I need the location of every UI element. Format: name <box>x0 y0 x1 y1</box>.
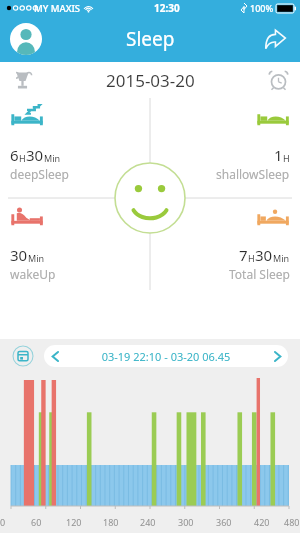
button[interactable]: Next <box>266 345 288 367</box>
button[interactable]: 7 <box>150 198 300 298</box>
staticText: 480 <box>284 516 300 528</box>
staticText: 2015-03-20 <box>106 69 195 92</box>
staticText: wakeUp <box>10 266 56 282</box>
staticText: 360 <box>216 516 232 528</box>
staticText: 1 <box>274 145 283 165</box>
staticText: H <box>283 152 290 164</box>
staticText: 30 <box>255 245 273 265</box>
staticText: 120 <box>66 516 82 528</box>
staticText: deepSleep <box>10 166 69 182</box>
staticText: 03-19 22:10 - 03-20 06.45 <box>66 349 266 364</box>
staticText: 6 <box>10 145 19 165</box>
button[interactable]: Previous <box>44 345 66 367</box>
staticText: 240 <box>140 516 156 528</box>
staticText: Total Sleep <box>229 266 290 282</box>
button[interactable]: Calendar <box>12 345 34 367</box>
staticText: MY MAXIS <box>34 2 81 15</box>
staticText: shallowSleep <box>216 166 290 182</box>
staticText: 30 <box>26 145 44 165</box>
staticText: Min <box>44 152 61 164</box>
staticText: 180 <box>103 516 119 528</box>
button[interactable]: Alarm <box>264 66 292 94</box>
staticText: H <box>19 152 26 164</box>
staticText: 7 <box>239 245 248 265</box>
staticText: 60 <box>31 516 42 528</box>
staticText: 300 <box>178 516 194 528</box>
button[interactable]: Previous <box>44 345 288 367</box>
staticText: H <box>248 252 255 264</box>
button[interactable]: 1 <box>150 98 300 198</box>
button[interactable]: Achievements <box>8 66 36 94</box>
button[interactable]: 30 <box>0 198 150 298</box>
button[interactable]: Profile <box>10 23 42 55</box>
staticText: 12:30 <box>154 1 180 15</box>
staticText: 0 <box>0 516 6 528</box>
button[interactable]: Share <box>258 22 292 56</box>
staticText: 30 <box>10 245 28 265</box>
staticText: Min <box>273 252 290 264</box>
staticText: Sleep <box>126 26 175 52</box>
button[interactable]: 6 <box>0 98 150 198</box>
staticText: 100% <box>250 2 274 14</box>
staticText: Min <box>28 252 45 264</box>
staticText: 420 <box>254 516 270 528</box>
